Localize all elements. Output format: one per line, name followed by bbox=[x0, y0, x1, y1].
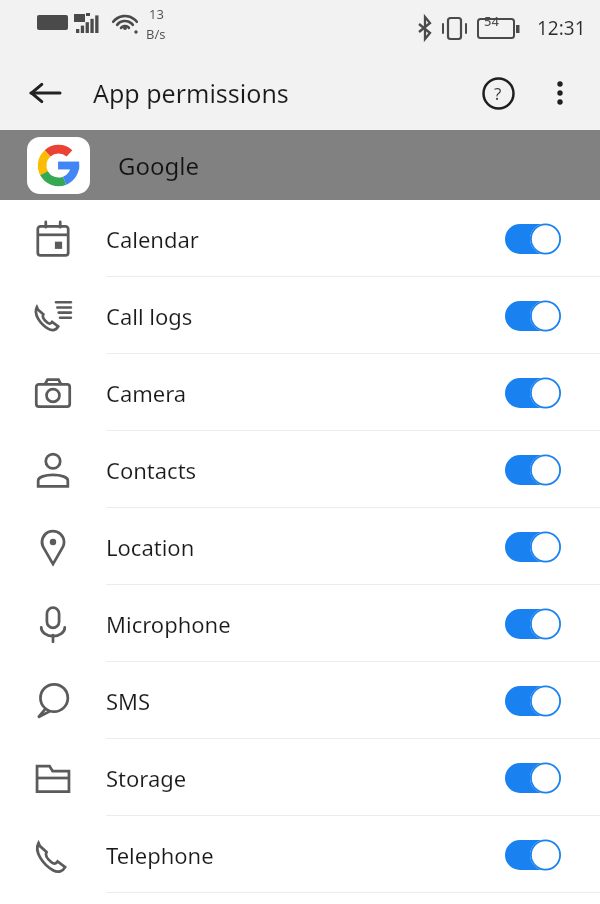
button[interactable]: Call logs permission, on bbox=[505, 299, 559, 333]
staticText: ? bbox=[494, 82, 502, 105]
button[interactable]: Storage permission, on bbox=[505, 761, 559, 795]
staticText: Telephone bbox=[106, 840, 214, 870]
button[interactable]: SMS permission, on bbox=[505, 684, 559, 718]
staticText: Location bbox=[106, 532, 195, 562]
button[interactable]: More options bbox=[534, 67, 586, 119]
staticText: Call logs bbox=[106, 301, 193, 331]
button[interactable]: Contacts bbox=[0, 431, 600, 508]
button[interactable]: Telephone bbox=[0, 816, 600, 893]
button[interactable]: Microphone bbox=[0, 585, 600, 662]
staticText: Google bbox=[118, 149, 199, 182]
button[interactable]: Calendar bbox=[0, 200, 600, 277]
button[interactable]: Contacts permission, on bbox=[505, 453, 559, 487]
button[interactable]: Call logs bbox=[0, 277, 600, 354]
button[interactable]: Calendar permission, on bbox=[505, 222, 559, 256]
staticText: Camera bbox=[106, 378, 187, 408]
button[interactable]: Google bbox=[0, 130, 600, 200]
staticText: Storage bbox=[106, 763, 187, 793]
staticText: Contacts bbox=[106, 455, 197, 485]
button[interactable]: Microphone permission, on bbox=[505, 607, 559, 641]
staticText: 54 bbox=[484, 12, 499, 30]
button[interactable]: SMS bbox=[0, 662, 600, 739]
staticText: Calendar bbox=[106, 224, 199, 254]
staticText: SMS bbox=[106, 686, 151, 716]
button[interactable]: Help bbox=[472, 67, 524, 119]
staticText: B/s bbox=[146, 25, 166, 43]
button[interactable]: Storage bbox=[0, 739, 600, 816]
button[interactable]: Telephone permission, on bbox=[505, 838, 559, 872]
button[interactable]: Back bbox=[18, 66, 72, 120]
staticText: Microphone bbox=[106, 609, 231, 639]
staticText: App permissions bbox=[93, 76, 289, 110]
button[interactable]: Location permission, on bbox=[505, 530, 559, 564]
staticText: 13 bbox=[149, 5, 164, 23]
button[interactable]: Location bbox=[0, 508, 600, 585]
button[interactable]: Camera bbox=[0, 354, 600, 431]
button[interactable]: Camera permission, on bbox=[505, 376, 559, 410]
staticText: 12:31 bbox=[537, 15, 586, 41]
